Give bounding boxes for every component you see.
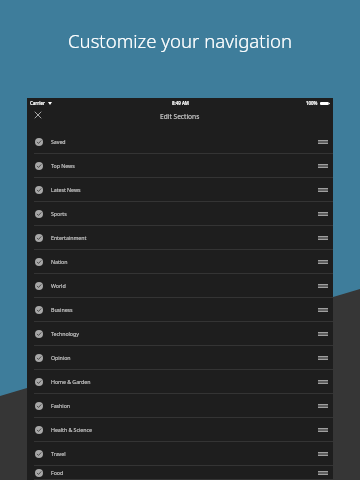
button[interactable]: Reorder Home & Garden: [316, 374, 329, 390]
staticText: Entertainment: [51, 234, 87, 241]
button[interactable]: Reorder Food: [316, 466, 329, 480]
button[interactable]: Nation: [27, 250, 333, 274]
staticText: Home & Garden: [51, 378, 91, 385]
button[interactable]: Reorder World: [316, 278, 329, 294]
button[interactable]: Reorder Travel: [316, 446, 329, 462]
button[interactable]: Reorder Top News: [316, 158, 329, 174]
button[interactable]: Reorder Latest News: [316, 182, 329, 198]
staticText: 8:49 AM: [172, 100, 189, 106]
button[interactable]: Reorder Technology: [316, 326, 329, 342]
button[interactable]: Reorder Sports: [316, 206, 329, 222]
button[interactable]: Sports: [27, 202, 333, 226]
button[interactable]: Technology: [27, 322, 333, 346]
staticText: Saved: [51, 138, 66, 145]
button[interactable]: Food: [27, 466, 333, 480]
button[interactable]: Health & Science: [27, 418, 333, 442]
button[interactable]: Entertainment: [27, 226, 333, 250]
staticText: Technology: [51, 330, 79, 337]
button[interactable]: Saved: [27, 130, 333, 154]
button[interactable]: Reorder Business: [316, 302, 329, 318]
staticText: World: [51, 282, 66, 289]
button[interactable]: Reorder Health & Science: [316, 422, 329, 438]
staticText: Food: [51, 469, 64, 476]
button[interactable]: Opinion: [27, 346, 333, 370]
button[interactable]: Reorder Nation: [316, 254, 329, 270]
button[interactable]: Reorder Fashion: [316, 398, 329, 414]
button[interactable]: Latest News: [27, 178, 333, 202]
button[interactable]: World: [27, 274, 333, 298]
staticText: Nation: [51, 258, 68, 265]
staticText: Opinion: [51, 354, 71, 361]
staticText: Edit Sections: [160, 112, 200, 121]
staticText: Sports: [51, 210, 67, 217]
button[interactable]: Reorder Entertainment: [316, 230, 329, 246]
staticText: Customize your navigation: [0, 28, 360, 53]
button[interactable]: Travel: [27, 442, 333, 466]
staticText: 100%: [306, 100, 318, 106]
button[interactable]: Home & Garden: [27, 370, 333, 394]
staticText: Business: [51, 306, 73, 313]
button[interactable]: Fashion: [27, 394, 333, 418]
button[interactable]: Close: [30, 107, 46, 123]
staticText: Top News: [51, 162, 75, 169]
staticText: Fashion: [51, 402, 71, 409]
button[interactable]: Top News: [27, 154, 333, 178]
button[interactable]: Reorder Opinion: [316, 350, 329, 366]
staticText: Carrier: [30, 100, 45, 106]
staticText: Travel: [51, 450, 66, 457]
button[interactable]: Business: [27, 298, 333, 322]
button[interactable]: Reorder Saved: [316, 134, 329, 150]
staticText: Health & Science: [51, 426, 92, 433]
staticText: Latest News: [51, 186, 81, 193]
